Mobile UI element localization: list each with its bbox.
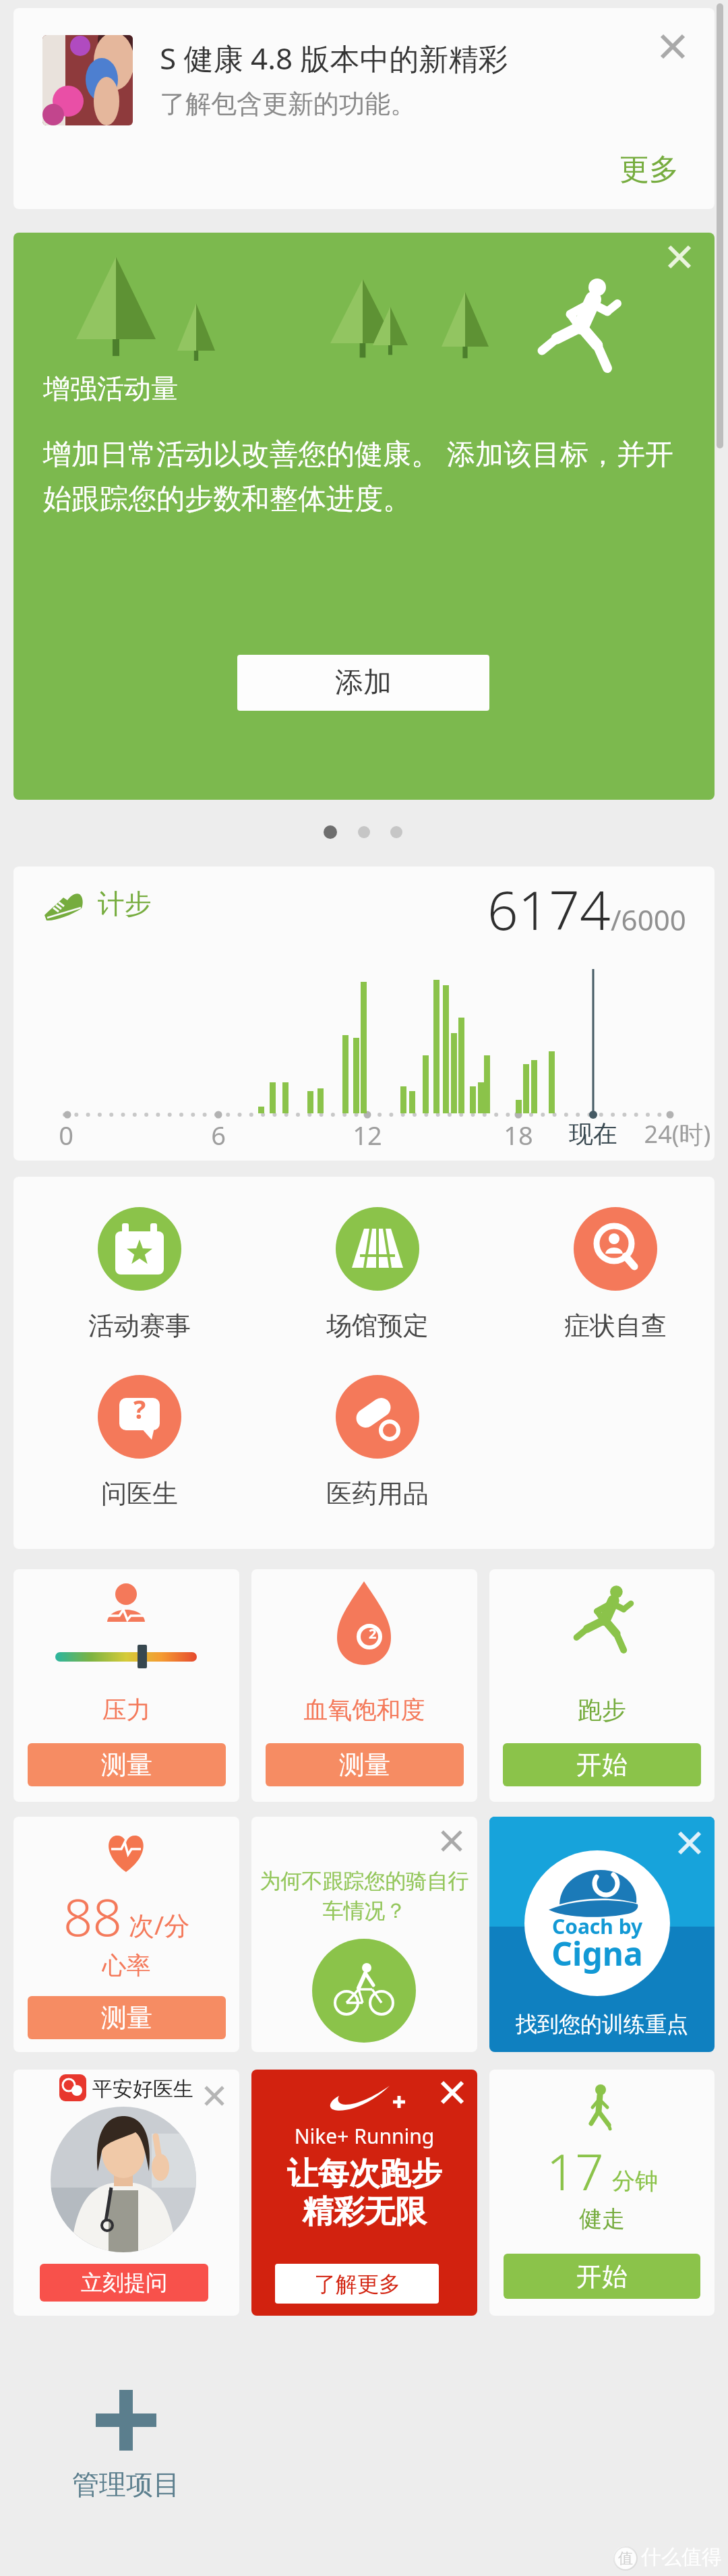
button[interactable]: 更多 [609,148,690,190]
staticText: 了解更多 [314,2271,400,2297]
button[interactable]: 了解更多 [275,2264,439,2304]
button[interactable] [190,2072,239,2120]
staticText: 找到您的训练重点 [489,2011,715,2038]
button[interactable]: Coach by [489,1817,715,2052]
button[interactable]: 医药用品 [303,1375,452,1500]
staticText: 了解包含更新的功能。 [160,88,632,120]
staticText: Nike+ Running [251,2122,477,2150]
staticText: 症状自查 [541,1310,690,1342]
staticText: 18 [491,1117,545,1152]
staticText: 精彩无限 [251,2192,477,2231]
staticText: Cigna [524,1931,670,1975]
staticText: 现在 [553,1119,634,1149]
staticText: 2 [369,1624,377,1643]
staticText: 压力 [13,1695,239,1725]
button[interactable]: 17 [489,2070,715,2316]
button[interactable] [655,233,704,281]
button[interactable]: 添加 [237,655,489,711]
button[interactable]: ? [65,1375,214,1500]
button[interactable]: 测量 [266,1743,464,1786]
staticText: 医药用品 [303,1477,452,1510]
staticText: 6 [191,1117,245,1152]
staticText: S 健康 4.8 版本中的新精彩 [160,38,632,78]
staticText: 12 [340,1117,394,1152]
staticText: 活动赛事 [65,1310,214,1342]
staticText: 增加日常活动以改善您的健康。 添加该目标，并开始跟踪您的步数和整体进度。 [43,434,690,517]
button[interactable]: 88 [13,1817,239,2052]
staticText: Coach by [524,1912,670,1940]
button[interactable]: 跑步 [489,1569,715,1802]
button[interactable]: 2 [251,1569,477,1802]
button[interactable]: 为何不跟踪您的骑自行 车情况？ [251,1817,477,2052]
staticText: 88 [63,1881,122,1952]
button[interactable]: 计步 [13,867,715,1161]
staticText: 增强活动量 [43,372,380,405]
staticText: 测量 [101,2001,152,2034]
button[interactable]: 压力 [13,1569,239,1802]
button[interactable] [648,22,697,71]
staticText: 让每次跑步 [251,2155,477,2194]
button[interactable] [428,2070,477,2117]
button[interactable]: 场馆预定 [303,1207,452,1333]
staticText: ? [133,1391,146,1421]
button[interactable]: S 健康 4.8 版本中的新精彩 [13,8,715,209]
staticText: 平安好医生 [92,2076,227,2102]
staticText: 开始 [576,1749,628,1781]
button[interactable]: 开始 [504,2254,700,2299]
staticText: 值 [618,2549,633,2568]
staticText: 问医生 [65,1477,214,1510]
button[interactable]: 平安好医生 [13,2070,239,2316]
staticText: 测量 [101,1749,152,1781]
staticText: 添加 [335,665,392,701]
staticText: 立刻提问 [81,2269,167,2296]
staticText: 跑步 [489,1695,715,1725]
staticText: /6000 [611,900,686,939]
staticText: 场馆预定 [303,1310,452,1342]
button[interactable]: 症状自查 [541,1207,690,1333]
button[interactable]: 管理项目 [59,2373,193,2508]
staticText: 计步 [98,887,233,920]
staticText: 开始 [576,2260,628,2293]
staticText: 心率 [13,1950,239,1981]
staticText: 血氧饱和度 [251,1695,477,1725]
staticText: 24(时) [630,1117,715,1150]
staticText: 管理项目 [59,2467,193,2501]
staticText: 分钟 [612,2167,658,2196]
button[interactable]: 测量 [28,1743,226,1786]
staticText: 为何不跟踪您的骑自行 车情况？ [258,1868,471,1924]
button[interactable]: 活动赛事 [65,1207,214,1333]
staticText: 健走 [489,2204,715,2233]
button[interactable]: 开始 [503,1743,701,1786]
staticText: 17 [547,2137,604,2205]
button[interactable] [665,1819,714,1867]
button[interactable] [427,1817,476,1865]
staticText: 0 [39,1117,93,1152]
staticText: 什么值得买 [641,2544,728,2576]
staticText: 6174 [487,872,611,945]
staticText: 次/分 [129,1907,190,1942]
button[interactable]: Nike+ Running [251,2070,477,2316]
staticText: 测量 [339,1749,390,1781]
button[interactable]: 立刻提问 [40,2264,208,2302]
staticText: 更多 [619,151,679,188]
button[interactable]: 测量 [28,1996,226,2039]
